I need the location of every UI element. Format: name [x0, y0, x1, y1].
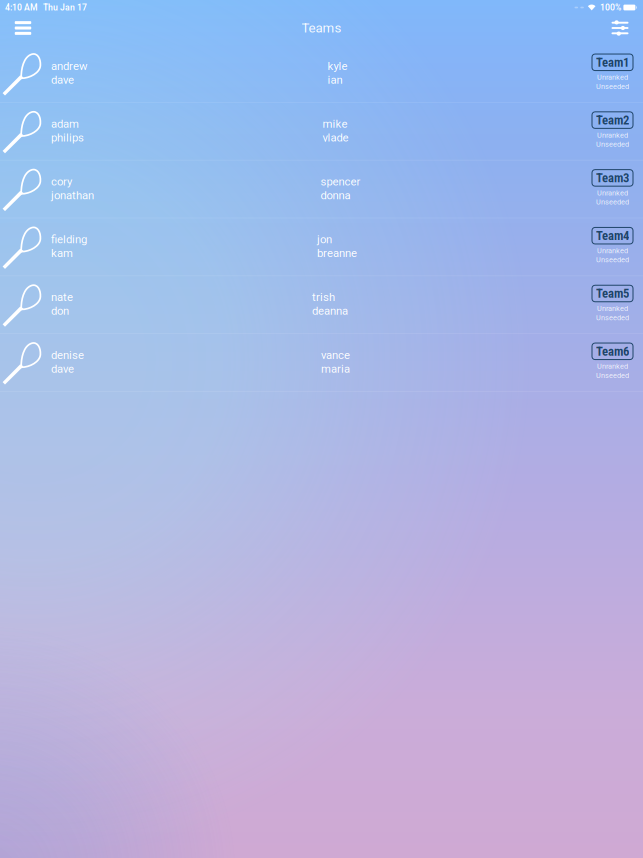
staticText: mike [322, 117, 347, 130]
staticText: denise [51, 348, 84, 362]
staticText: donna [320, 189, 350, 202]
staticText: Teams [301, 20, 341, 36]
button[interactable]: nate [0, 276, 643, 334]
staticText: jon [317, 233, 332, 246]
staticText: philips [51, 131, 84, 144]
button[interactable]: Filter [597, 13, 643, 42]
staticText: 4:10 AM [5, 2, 38, 13]
staticText: ian [327, 73, 342, 86]
staticText: kam [51, 246, 73, 260]
staticText: Unranked [597, 189, 628, 197]
staticText: Team2 [596, 113, 629, 127]
staticText: maria [321, 362, 350, 375]
staticText: Unranked [597, 246, 628, 255]
button[interactable]: andrew [0, 45, 643, 103]
staticText: Unseeded [596, 371, 629, 380]
staticText: Unseeded [596, 313, 629, 322]
staticText: adam [51, 117, 79, 130]
staticText: dave [51, 73, 74, 86]
staticText: Unseeded [596, 82, 629, 91]
staticText: Team6 [596, 344, 629, 359]
button[interactable]: fielding [0, 218, 643, 276]
staticText: trish [312, 291, 335, 304]
staticText: Team1 [596, 55, 629, 70]
staticText: Team4 [596, 228, 629, 243]
staticText: fielding [51, 233, 87, 246]
staticText: Unseeded [596, 198, 629, 206]
staticText: Unranked [597, 131, 628, 139]
staticText: deanna [312, 304, 348, 318]
staticText: cory [51, 175, 72, 188]
staticText: vance [321, 348, 350, 362]
button[interactable]: denise [0, 334, 643, 392]
staticText: breanne [317, 246, 357, 260]
staticText: vlade [322, 131, 348, 144]
staticText: Unranked [597, 304, 628, 313]
staticText: Unranked [597, 73, 628, 82]
staticText: Thu Jan 17 [43, 2, 87, 13]
staticText: spencer [320, 175, 360, 188]
staticText: jonathan [51, 189, 94, 202]
staticText: Team5 [596, 286, 629, 301]
button[interactable]: adam [0, 103, 643, 161]
staticText: Team3 [596, 170, 629, 185]
staticText: kyle [327, 59, 347, 73]
staticText: Unseeded [596, 140, 629, 148]
staticText: nate [51, 291, 73, 304]
staticText: Unseeded [596, 255, 629, 264]
staticText: dave [51, 362, 74, 375]
button[interactable]: Menu [0, 13, 46, 42]
staticText: 100% [600, 2, 621, 13]
staticText: Unranked [597, 362, 628, 371]
staticText: don [51, 304, 69, 318]
button[interactable]: cory [0, 161, 643, 218]
staticText: andrew [51, 59, 88, 73]
